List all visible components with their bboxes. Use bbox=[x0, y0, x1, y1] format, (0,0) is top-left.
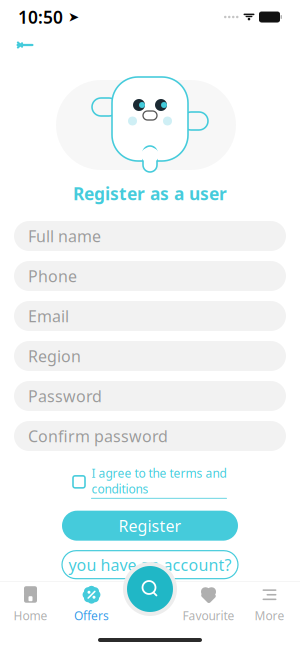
staticText: Confirm password bbox=[28, 425, 168, 447]
staticText: Register as a user bbox=[73, 182, 227, 205]
button[interactable]: Offers bbox=[61, 582, 122, 628]
button[interactable]: Password bbox=[14, 381, 286, 411]
staticText: More bbox=[254, 608, 284, 624]
staticText: Phone bbox=[28, 265, 77, 287]
staticText: ◗ bbox=[248, 16, 249, 18]
staticText: Email bbox=[28, 305, 69, 327]
staticText: you have an account? bbox=[68, 554, 231, 575]
staticText: Region bbox=[28, 345, 81, 367]
button[interactable]: More bbox=[239, 582, 300, 628]
staticText: Password bbox=[28, 385, 102, 407]
staticText: Offers bbox=[74, 608, 109, 624]
button[interactable]: I agree to the terms and conditions bbox=[73, 465, 227, 499]
staticText: ➤ bbox=[63, 9, 79, 24]
staticText: Register bbox=[118, 515, 181, 536]
staticText: Home bbox=[13, 608, 47, 624]
staticText: Favourite bbox=[182, 608, 234, 624]
button[interactable]: Full name bbox=[14, 221, 286, 251]
staticText: 10:50 bbox=[18, 5, 63, 28]
button[interactable]: Register bbox=[62, 511, 238, 541]
button[interactable]: Region bbox=[14, 341, 286, 371]
button[interactable]: you have an account? bbox=[62, 551, 238, 579]
button[interactable]: Favourite bbox=[178, 582, 239, 628]
button[interactable]: Search bbox=[123, 562, 177, 616]
button[interactable]: Email bbox=[14, 301, 286, 331]
button[interactable]: Phone bbox=[14, 261, 286, 291]
staticText: I agree to the terms and conditions bbox=[91, 465, 226, 497]
staticText: Full name bbox=[28, 225, 101, 247]
button[interactable]: Back bbox=[8, 32, 42, 58]
button[interactable]: Confirm password bbox=[14, 421, 286, 451]
button[interactable]: Home bbox=[0, 582, 61, 628]
